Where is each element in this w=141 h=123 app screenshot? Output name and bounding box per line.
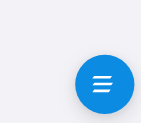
button[interactable]: Sort <box>75 55 134 114</box>
